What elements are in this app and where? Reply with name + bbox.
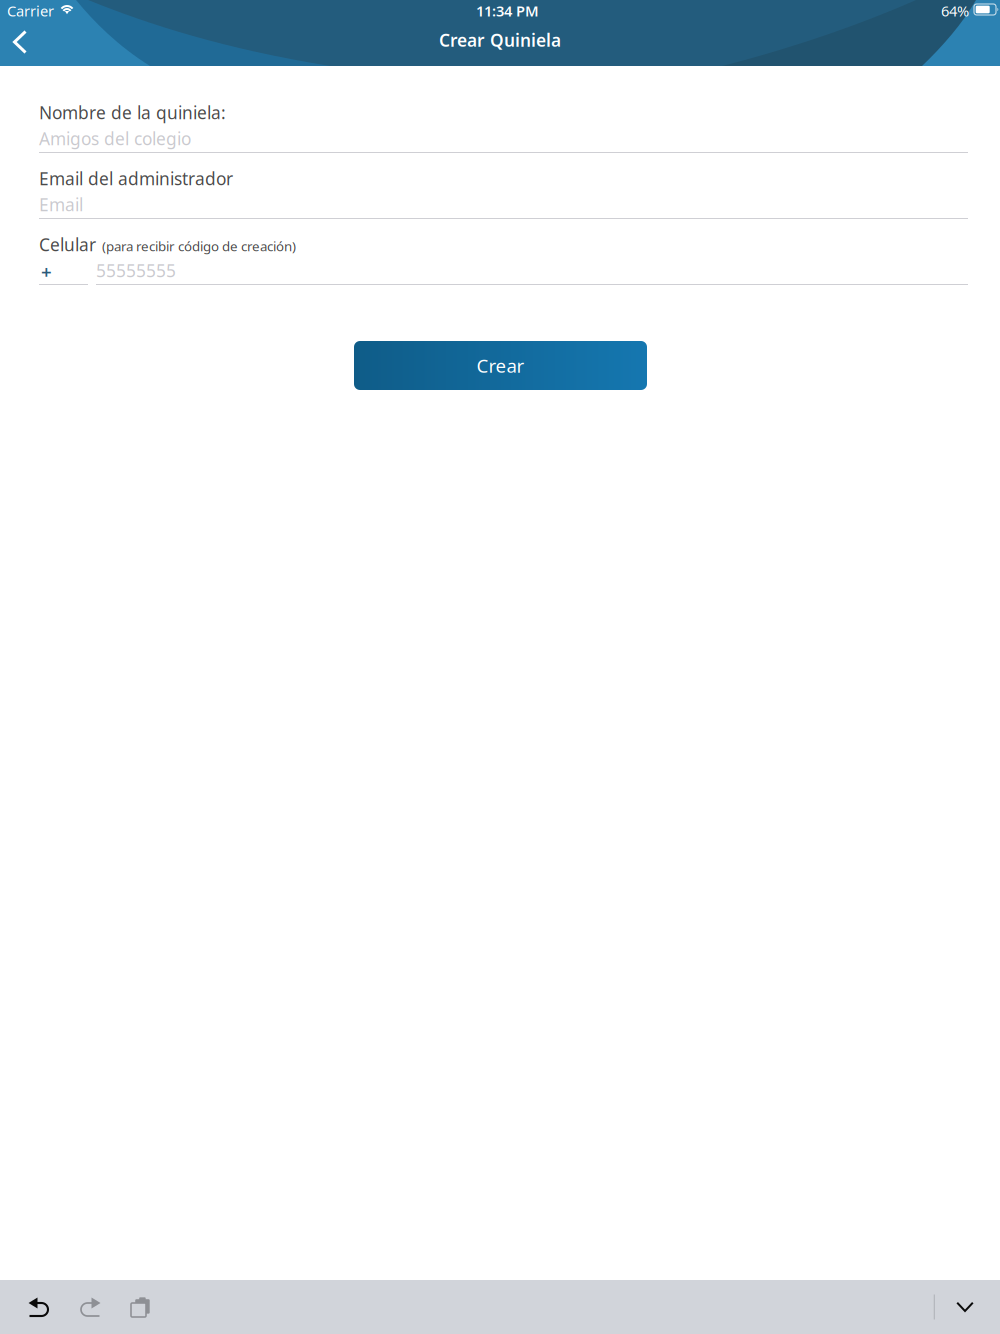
button[interactable]: Undo [15,1280,64,1333]
staticText: Celular [39,233,96,256]
button[interactable]: Paste [115,1281,166,1333]
staticText: Email [39,193,83,216]
staticText: 55555555 [96,259,176,282]
staticText: + [41,259,52,284]
staticText: Crear Quiniela [439,28,561,51]
button[interactable]: Crear [354,341,647,390]
button[interactable]: Hide keyboard [935,1280,1000,1334]
staticText: Crear [476,353,524,378]
staticText: Email del administrador [39,167,233,190]
staticText: Carrier [7,1,54,20]
staticText: Nombre de la quiniela: [39,101,226,124]
staticText: 11:34 PM [476,1,539,20]
button[interactable]: Back [0,20,42,64]
button[interactable]: Redo [64,1280,115,1333]
staticText: (para recibir código de creación) [102,237,296,255]
staticText: Amigos del colegio [39,127,191,150]
staticText: 64% [941,1,969,20]
